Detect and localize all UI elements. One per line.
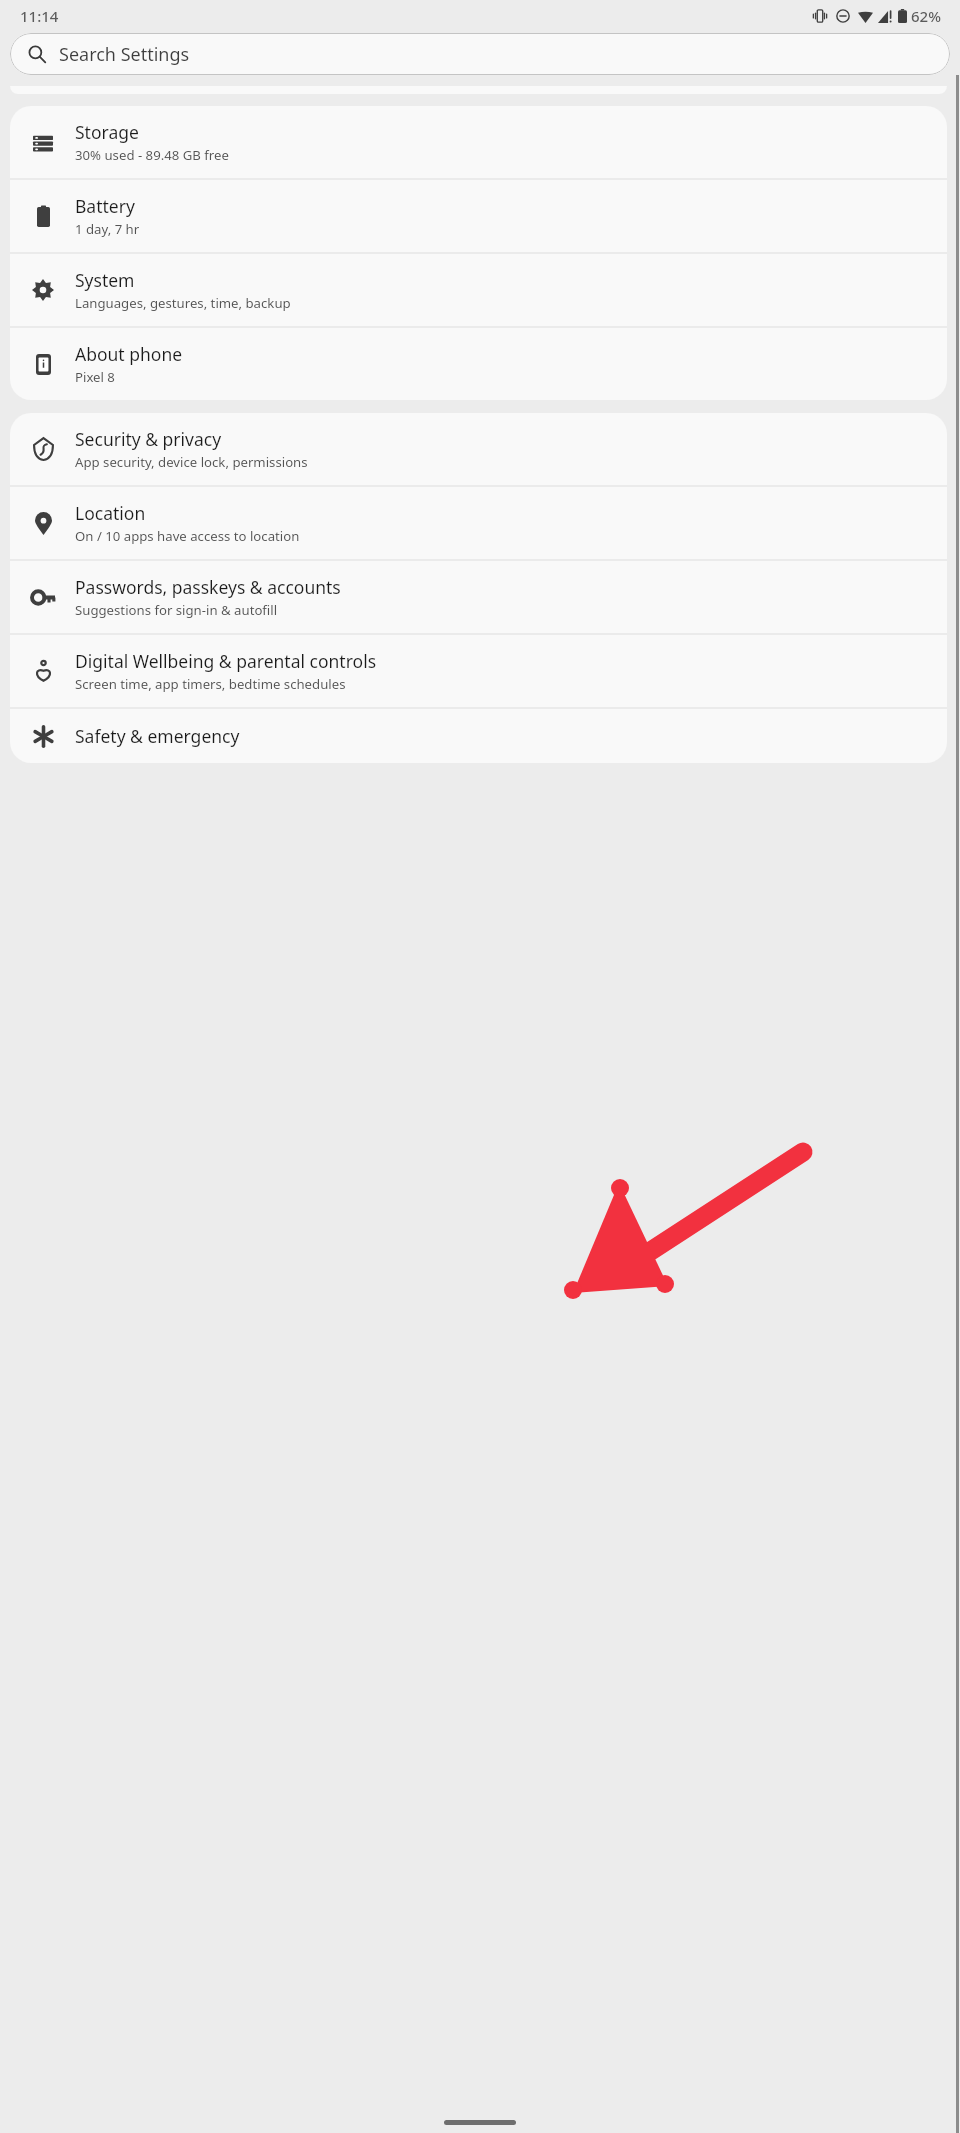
staticText: Digital Wellbeing & parental controls xyxy=(75,649,377,673)
staticText: Suggestions for sign-in & autofill xyxy=(75,601,278,619)
button[interactable]: Security & privacy xyxy=(10,413,947,485)
button[interactable]: Battery xyxy=(10,180,947,252)
staticText: Storage xyxy=(75,120,139,144)
staticText: Screen time, app timers, bedtime schedul… xyxy=(75,675,346,693)
staticText: About phone xyxy=(75,342,183,366)
other: Pointer arrow xyxy=(0,0,960,2133)
button[interactable]: About phone xyxy=(10,328,947,400)
button[interactable]: Storage xyxy=(10,106,947,178)
staticText: Search Settings xyxy=(59,42,190,67)
staticText: Security & privacy xyxy=(75,427,222,451)
button[interactable]: Safety & emergency xyxy=(10,709,947,763)
staticText: Passwords, passkeys & accounts xyxy=(75,575,341,599)
button[interactable]: Search Settings xyxy=(10,33,950,75)
staticText: Battery xyxy=(75,194,135,218)
button[interactable]: Location xyxy=(10,487,947,559)
staticText: 62% xyxy=(911,6,941,26)
staticText: 11:14 xyxy=(20,6,59,26)
staticText: System xyxy=(75,268,135,292)
staticText: Languages, gestures, time, backup xyxy=(75,294,291,312)
staticText: App security, device lock, permissions xyxy=(75,453,308,471)
staticText: On / 10 apps have access to location xyxy=(75,527,300,545)
staticText: Pixel 8 xyxy=(75,368,115,386)
button[interactable]: Passwords, passkeys & accounts xyxy=(10,561,947,633)
button[interactable]: System xyxy=(10,254,947,326)
staticText: 30% used - 89.48 GB free xyxy=(75,146,229,164)
staticText: Location xyxy=(75,501,146,525)
staticText: 1 day, 7 hr xyxy=(75,220,140,238)
staticText: Safety & emergency xyxy=(75,724,240,748)
button[interactable]: Digital Wellbeing & parental controls xyxy=(10,635,947,707)
